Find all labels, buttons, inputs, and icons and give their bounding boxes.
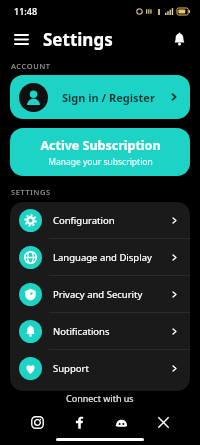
button[interactable]: Sign in / Register [10, 75, 190, 119]
staticText: ACCOUNT [11, 61, 51, 71]
staticText: Configuration [53, 214, 115, 227]
button[interactable]: Notifications [166, 26, 192, 52]
button[interactable]: Notifications [10, 313, 190, 349]
button[interactable]: Facebook [68, 411, 90, 433]
button[interactable]: Support [10, 350, 190, 386]
staticText: Settings [43, 28, 113, 51]
button[interactable]: Instagram [26, 411, 48, 433]
staticText: Manage your subscription [48, 156, 153, 168]
button[interactable]: Discord [110, 411, 132, 433]
staticText: Support [53, 362, 89, 375]
staticText: Connect with us [66, 392, 134, 404]
button[interactable]: X [152, 411, 174, 433]
button[interactable]: Active Subscription [10, 128, 190, 176]
button[interactable]: Open navigation menu [8, 26, 34, 52]
button[interactable]: Configuration [10, 202, 190, 238]
staticText: Privacy and Security [53, 288, 143, 301]
button[interactable]: Language and Display [10, 239, 190, 275]
staticText: Notifications [53, 325, 110, 338]
button[interactable]: Privacy and Security [10, 276, 190, 312]
staticText: SETTINGS [11, 187, 51, 197]
staticText: Sign in / Register [62, 90, 155, 105]
staticText: Active Subscription [40, 137, 161, 154]
staticText: 11:48 [14, 5, 38, 17]
staticText: Language and Display [53, 251, 152, 264]
